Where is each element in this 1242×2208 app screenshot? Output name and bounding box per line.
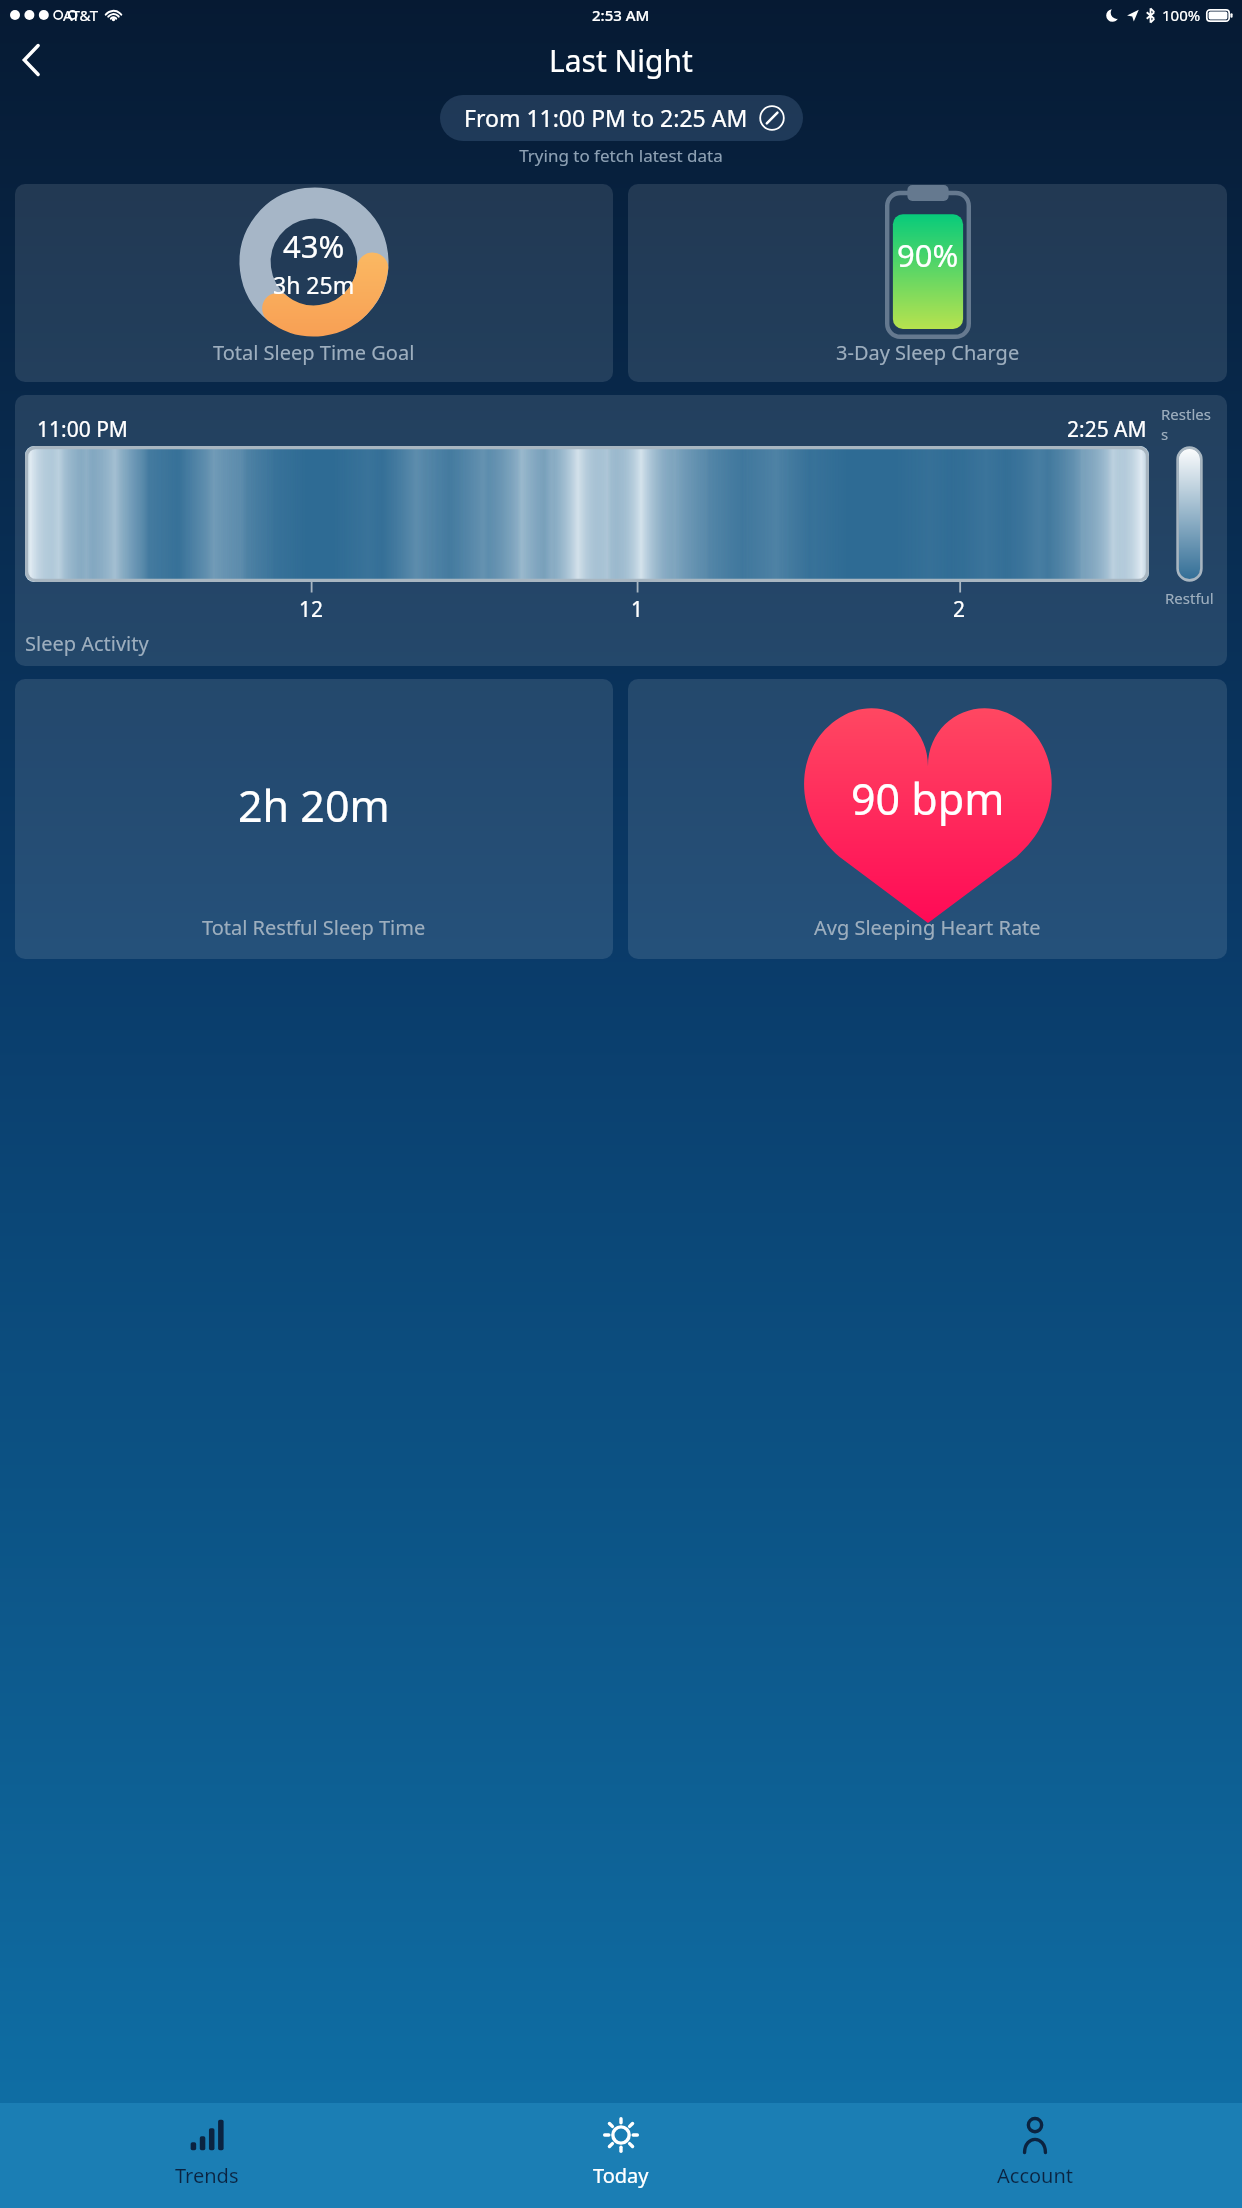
- staticText: Total Sleep Time Goal: [213, 339, 415, 366]
- staticText: 2h 20m: [238, 776, 390, 835]
- staticText: 2:25 AM: [1067, 415, 1147, 444]
- staticText: Restful: [1165, 588, 1214, 608]
- staticText: Today: [593, 2162, 649, 2189]
- staticText: Total Restful Sleep Time: [202, 914, 426, 941]
- button[interactable]: From 11:00 PM to 2:25 AM: [440, 95, 803, 141]
- staticText: 1: [631, 595, 644, 624]
- staticText: 2:53 AM: [592, 5, 650, 25]
- button[interactable]: 11:00 PM: [15, 395, 1227, 666]
- button[interactable]: Today: [414, 2103, 828, 2208]
- staticText: Account: [997, 2162, 1074, 2189]
- button[interactable]: Back: [6, 35, 56, 85]
- staticText: 12: [299, 595, 324, 624]
- staticText: 90 bpm: [851, 769, 1005, 828]
- staticText: 90%: [897, 234, 959, 276]
- button[interactable]: Account: [828, 2103, 1242, 2208]
- button[interactable]: 90%: [628, 184, 1227, 382]
- button[interactable]: 90 bpm: [628, 679, 1227, 959]
- staticText: 100%: [1162, 5, 1201, 25]
- button[interactable]: 2h 20m: [15, 679, 613, 959]
- button[interactable]: 43%: [15, 184, 613, 382]
- staticText: Avg Sleeping Heart Rate: [814, 914, 1041, 941]
- staticText: Sleep Activity: [25, 630, 149, 657]
- staticText: From 11:00 PM to 2:25 AM: [464, 102, 748, 133]
- staticText: 11:00 PM: [37, 415, 128, 444]
- staticText: Last Night: [549, 40, 693, 81]
- staticText: Trying to fetch latest data: [0, 144, 1242, 167]
- button[interactable]: Trends: [0, 2103, 414, 2208]
- staticText: 3-Day Sleep Charge: [836, 339, 1020, 366]
- staticText: 3h 25m: [273, 269, 355, 300]
- staticText: 2: [953, 595, 966, 624]
- staticText: AT&T: [63, 5, 98, 25]
- staticText: Restless: [1161, 404, 1217, 444]
- staticText: 43%: [283, 225, 345, 267]
- staticText: Trends: [175, 2162, 239, 2189]
